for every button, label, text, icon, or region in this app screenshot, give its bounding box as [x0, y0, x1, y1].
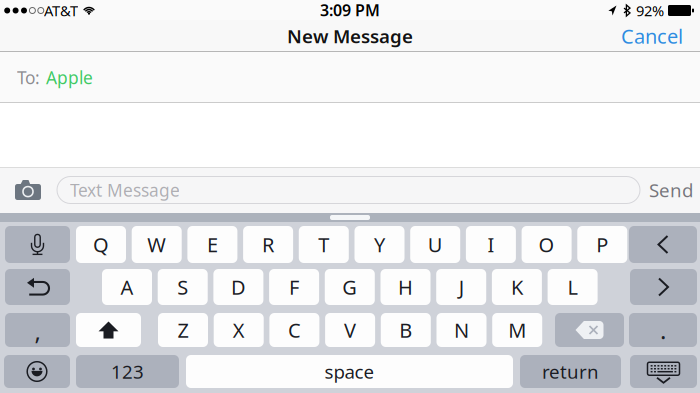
staticText: space [324, 359, 374, 384]
button[interactable]: A [102, 269, 152, 305]
staticText: Y [374, 231, 385, 258]
button[interactable]: Shift [76, 313, 141, 347]
staticText: New Message [287, 24, 413, 48]
staticText: X [233, 317, 245, 343]
button[interactable]: Send [640, 178, 700, 202]
button[interactable]: Numbers [76, 355, 179, 388]
button[interactable]: B [381, 313, 431, 347]
staticText: F [289, 274, 299, 300]
staticText: O [539, 231, 555, 258]
staticText: D [231, 274, 246, 300]
button[interactable]: Delete [555, 313, 624, 347]
staticText: B [399, 317, 412, 343]
staticText: K [511, 274, 523, 300]
button[interactable]: L [548, 269, 598, 305]
staticText: A [120, 274, 133, 300]
staticText: M [508, 317, 526, 343]
button[interactable]: Q [76, 226, 126, 263]
staticText: 123 [111, 359, 144, 384]
staticText: 92% [636, 1, 664, 20]
button[interactable]: Camera [0, 180, 57, 200]
staticText: E [207, 231, 218, 258]
staticText: Text Message [70, 178, 180, 201]
button[interactable]: G [325, 269, 375, 305]
button[interactable]: Undo [5, 269, 70, 305]
button[interactable]: Previous field [629, 226, 697, 263]
button[interactable]: Hide keyboard [630, 355, 697, 388]
staticText: W [147, 231, 166, 258]
staticText: AT&T [44, 1, 78, 20]
button[interactable]: U [410, 226, 460, 263]
button[interactable]: E [187, 226, 237, 263]
button[interactable]: Period [629, 313, 697, 347]
button[interactable]: Space [186, 355, 513, 388]
button[interactable]: Z [158, 313, 208, 347]
button[interactable]: W [132, 226, 182, 263]
button[interactable]: F [269, 269, 319, 305]
staticText: , [34, 315, 40, 347]
button[interactable]: Dictation [5, 226, 70, 263]
button[interactable]: J [436, 269, 486, 305]
button[interactable]: M [492, 313, 542, 347]
staticText: R [262, 231, 274, 258]
staticText: N [454, 317, 469, 343]
staticText: To: [17, 66, 40, 89]
staticText: C [288, 317, 301, 343]
staticText: 3:09 PM [320, 0, 380, 21]
button[interactable]: H [380, 269, 430, 305]
button[interactable]: S [158, 269, 208, 305]
button[interactable]: Next field [630, 269, 697, 305]
button[interactable]: Cancel [621, 23, 700, 49]
button[interactable]: D [213, 269, 263, 305]
staticText: S [177, 274, 188, 300]
button[interactable]: Emoji [4, 355, 70, 388]
staticText: Cancel [621, 23, 683, 49]
staticText: Apple [46, 66, 93, 89]
staticText: L [568, 274, 578, 300]
staticText: J [459, 274, 464, 300]
button[interactable]: R [243, 226, 293, 263]
staticText: Z [177, 317, 188, 343]
button[interactable]: N [436, 313, 486, 347]
staticText: Send [649, 178, 693, 202]
staticText: I [487, 231, 494, 258]
button[interactable]: K [492, 269, 542, 305]
button[interactable]: Y [354, 226, 404, 263]
staticText: return [542, 359, 599, 384]
button[interactable]: V [325, 313, 375, 347]
button[interactable]: P [577, 226, 627, 263]
staticText: P [596, 231, 608, 258]
staticText: Q [93, 231, 109, 258]
button[interactable]: I [466, 226, 516, 263]
button[interactable]: T [299, 226, 349, 263]
staticText: G [342, 274, 357, 300]
staticText: T [318, 231, 329, 258]
staticText: V [344, 317, 356, 343]
button[interactable]: Text Message [57, 176, 640, 203]
staticText: . [660, 314, 666, 346]
button[interactable]: X [214, 313, 264, 347]
button[interactable]: Return [520, 355, 621, 388]
button[interactable]: O [522, 226, 572, 263]
button[interactable]: C [269, 313, 319, 347]
staticText: U [428, 231, 443, 258]
staticText: H [398, 274, 413, 300]
button[interactable]: Comma [5, 313, 70, 347]
